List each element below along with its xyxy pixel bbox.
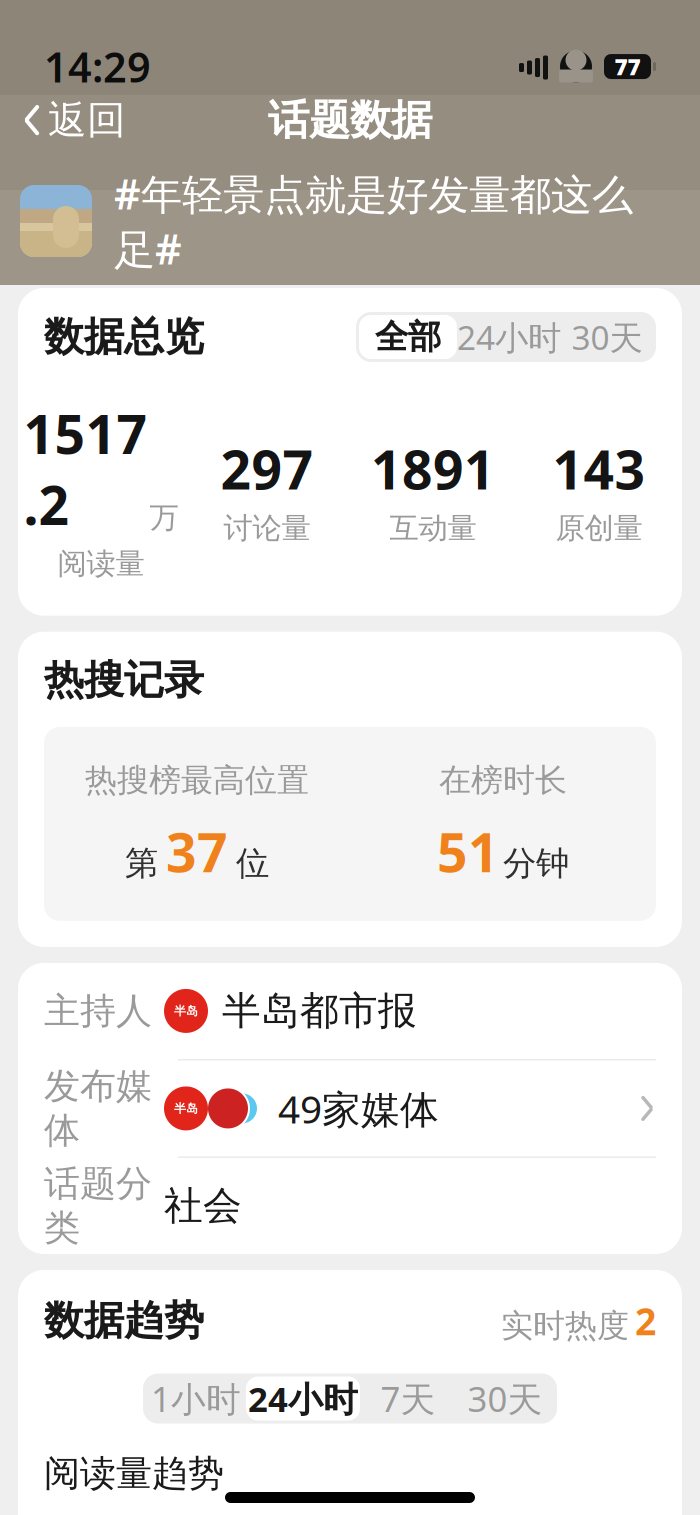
staticText: 原创量 bbox=[555, 510, 642, 546]
button[interactable]: 全部 bbox=[359, 315, 457, 359]
button[interactable]: 发布媒体 bbox=[18, 1060, 682, 1156]
staticText: 37 bbox=[166, 816, 228, 887]
staticText: 社会 bbox=[164, 1182, 242, 1230]
staticText: 分钟 bbox=[503, 843, 569, 884]
staticText: 在榜时长 bbox=[439, 761, 567, 800]
staticText: 数据总览 bbox=[44, 312, 204, 361]
staticText: 半岛 bbox=[174, 1101, 198, 1116]
staticText: 阅读量 bbox=[57, 546, 144, 582]
staticText: 讨论量 bbox=[223, 510, 310, 546]
staticText: 阅读量趋势 bbox=[44, 1451, 224, 1496]
staticText: 第 bbox=[125, 843, 158, 884]
staticText: 1小时 bbox=[151, 1375, 241, 1421]
staticText: 话题数据 bbox=[268, 95, 432, 145]
staticText: 全部 bbox=[375, 316, 441, 357]
staticText: 51 bbox=[437, 816, 499, 887]
staticText: 热搜记录 bbox=[44, 656, 204, 705]
staticText: 1517.2 bbox=[23, 398, 147, 540]
button[interactable]: 30天 bbox=[561, 315, 653, 359]
staticText: 互动量 bbox=[389, 510, 476, 546]
staticText: 14:29 bbox=[44, 39, 151, 94]
staticText: 143 bbox=[552, 433, 645, 504]
staticText: 77 bbox=[614, 51, 640, 82]
staticText: 24小时 bbox=[248, 1375, 358, 1421]
staticText: 发布媒体 bbox=[44, 1064, 152, 1153]
staticText: 49家媒体 bbox=[278, 1083, 439, 1134]
button[interactable]: 24小时 bbox=[246, 1376, 360, 1420]
staticText: 半岛 bbox=[174, 1004, 198, 1018]
button[interactable]: 返回 bbox=[4, 86, 144, 154]
staticText: #年轻景点就是好发量都这么足# bbox=[114, 166, 633, 276]
staticText: 位 bbox=[236, 843, 269, 884]
staticText: 30天 bbox=[571, 315, 642, 359]
button[interactable]: 30天 bbox=[456, 1376, 554, 1420]
button[interactable]: 1小时 bbox=[146, 1376, 246, 1420]
staticText: 返回 bbox=[48, 96, 126, 144]
staticText: 297 bbox=[220, 433, 313, 504]
staticText: 万 bbox=[149, 500, 178, 536]
staticText: 1891 bbox=[371, 433, 495, 504]
staticText: 话题分类 bbox=[44, 1162, 152, 1250]
staticText: 热搜榜最高位置 bbox=[85, 761, 309, 800]
button[interactable]: 7天 bbox=[360, 1376, 456, 1420]
staticText: 30天 bbox=[467, 1375, 542, 1421]
staticText: 半岛都市报 bbox=[222, 987, 417, 1035]
staticText: 24小时 bbox=[457, 315, 561, 359]
staticText: 7天 bbox=[380, 1375, 435, 1421]
button[interactable]: 24小时 bbox=[457, 315, 561, 359]
staticText: 实时热度 bbox=[501, 1306, 629, 1345]
staticText: 主持人 bbox=[44, 989, 152, 1033]
staticText: 2 bbox=[635, 1296, 656, 1345]
staticText: 数据趋势 bbox=[44, 1296, 204, 1345]
